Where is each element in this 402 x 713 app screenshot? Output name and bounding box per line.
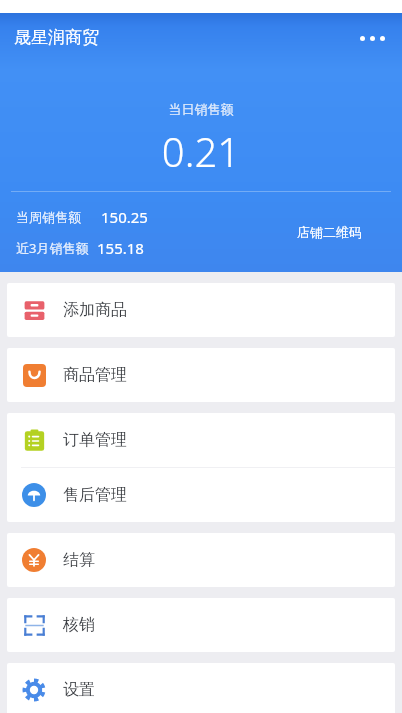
staticText: 当周销售额 (16, 209, 81, 225)
staticText: 155.18 (97, 238, 144, 258)
button[interactable]: More options (350, 16, 394, 60)
staticText: 结算 (63, 550, 95, 570)
button[interactable]: 核销 (7, 598, 395, 652)
staticText: 150.25 (101, 207, 148, 227)
button[interactable]: 设置 (7, 663, 395, 713)
staticText: 当日销售额 (0, 101, 402, 117)
button[interactable]: 结算 (7, 533, 395, 587)
staticText: 商品管理 (63, 365, 127, 385)
button[interactable]: 店铺二维码 (256, 192, 402, 272)
staticText: 0.21 (0, 124, 402, 178)
button[interactable]: 售后管理 (7, 468, 395, 522)
button[interactable]: 添加商品 (7, 283, 395, 337)
staticText: 添加商品 (63, 300, 127, 320)
button[interactable]: 商品管理 (7, 348, 395, 402)
staticText: 店铺二维码 (297, 224, 362, 240)
staticText: 近3月销售额 (16, 239, 89, 257)
button[interactable]: 订单管理 (7, 413, 395, 467)
staticText: 设置 (63, 680, 95, 700)
staticText: 核销 (63, 615, 95, 635)
staticText: 订单管理 (63, 430, 127, 450)
staticText: 晟星润商贸 (14, 27, 99, 48)
staticText: 售后管理 (63, 485, 127, 505)
